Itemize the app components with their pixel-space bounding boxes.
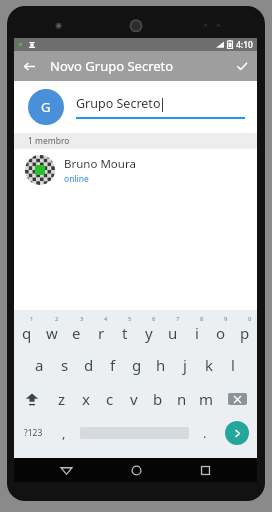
button[interactable]: s — [52, 348, 77, 382]
button[interactable]: h — [149, 348, 173, 382]
button[interactable]: d — [77, 348, 101, 382]
button[interactable]: a — [27, 348, 52, 382]
staticText: k — [205, 355, 214, 375]
staticText: 9 — [224, 315, 228, 323]
button[interactable]: j — [173, 348, 197, 382]
staticText: p — [240, 323, 250, 343]
button[interactable]: Change group icon — [28, 89, 64, 125]
staticText: . — [203, 424, 207, 442]
staticText: z — [58, 389, 66, 409]
button[interactable]: 9 — [209, 314, 233, 348]
staticText: m — [199, 389, 214, 409]
staticText: x — [82, 389, 90, 409]
staticText: w — [46, 323, 58, 343]
button[interactable]: 4 — [89, 314, 113, 348]
staticText: 4:10 — [236, 39, 253, 51]
button[interactable]: x — [74, 382, 98, 416]
staticText: 4 — [104, 315, 108, 323]
staticText: n — [177, 389, 187, 409]
button[interactable]: Space — [75, 416, 193, 450]
staticText: s — [61, 355, 69, 375]
staticText: d — [84, 355, 94, 375]
staticText: i — [195, 323, 199, 343]
staticText: j — [183, 355, 187, 375]
staticText: o — [216, 323, 226, 343]
staticText: online — [64, 173, 89, 185]
staticText: r — [98, 323, 105, 343]
button[interactable]: Done — [227, 51, 257, 81]
staticText: 3 — [80, 315, 84, 323]
button[interactable]: . — [193, 416, 216, 450]
staticText: t — [122, 323, 128, 343]
staticText: v — [130, 389, 138, 409]
staticText: q — [22, 323, 32, 343]
button[interactable]: Backspace — [218, 382, 257, 416]
button[interactable]: Grupo Secreto — [76, 95, 245, 119]
staticText: 7 — [176, 315, 180, 323]
staticText: 8 — [200, 315, 204, 323]
button[interactable]: 6 — [137, 314, 161, 348]
staticText: ?123 — [24, 427, 43, 439]
staticText: y — [145, 323, 153, 343]
staticText: l — [231, 355, 235, 375]
staticText: G — [41, 98, 51, 116]
button[interactable]: b — [146, 382, 170, 416]
button[interactable]: c — [98, 382, 122, 416]
button[interactable]: m — [194, 382, 218, 416]
staticText: 2 — [55, 315, 59, 323]
button[interactable]: 2 — [39, 314, 64, 348]
button[interactable]: n — [170, 382, 194, 416]
button[interactable]: l — [221, 348, 245, 382]
staticText: h — [156, 355, 166, 375]
staticText: 5 — [128, 315, 132, 323]
staticText: , — [62, 424, 66, 442]
staticText: a — [35, 355, 44, 375]
button[interactable]: 7 — [161, 314, 185, 348]
staticText: Novo Grupo Secreto — [50, 57, 174, 75]
button[interactable]: 3 — [64, 314, 89, 348]
button[interactable]: k — [197, 348, 221, 382]
staticText: b — [153, 389, 163, 409]
staticText: Grupo Secreto — [76, 95, 161, 112]
button[interactable]: g — [125, 348, 149, 382]
button[interactable]: v — [122, 382, 146, 416]
staticText: e — [72, 323, 81, 343]
button[interactable]: , — [52, 416, 75, 450]
staticText: f — [110, 355, 116, 375]
staticText: 1 — [30, 315, 34, 323]
button[interactable]: Navigate up — [14, 51, 44, 81]
button[interactable]: 8 — [185, 314, 209, 348]
button[interactable]: Home — [119, 458, 153, 482]
button[interactable]: Bruno Moura — [14, 149, 257, 191]
button[interactable]: Recent apps — [188, 458, 222, 482]
staticText: 6 — [152, 315, 156, 323]
button[interactable]: 1 — [14, 314, 39, 348]
button[interactable]: Enter — [216, 416, 257, 450]
staticText: 0 — [248, 315, 252, 323]
button[interactable]: f — [101, 348, 125, 382]
button[interactable]: 5 — [113, 314, 137, 348]
staticText: c — [106, 389, 114, 409]
staticText: g — [132, 355, 142, 375]
staticText: 1 membro — [28, 135, 70, 147]
button[interactable]: Back — [49, 458, 83, 482]
button[interactable]: z — [49, 382, 74, 416]
button[interactable]: Shift — [14, 382, 49, 416]
staticText: Bruno Moura — [64, 156, 136, 172]
button[interactable]: ?123 — [14, 416, 52, 450]
button[interactable]: 0 — [233, 314, 257, 348]
staticText: u — [168, 323, 178, 343]
